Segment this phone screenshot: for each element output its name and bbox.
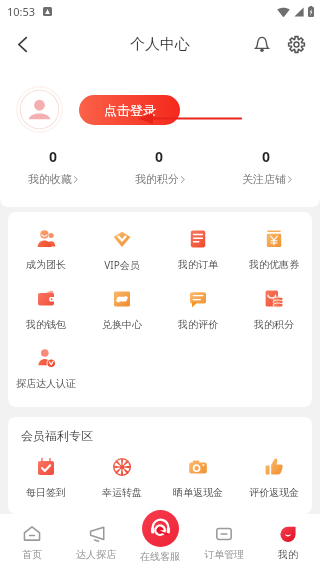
button[interactable]: VIP会员 <box>84 229 160 289</box>
button[interactable]: 0 <box>106 147 213 186</box>
button[interactable]: 0 <box>213 147 320 186</box>
button[interactable]: 每日签到 <box>8 457 84 499</box>
staticText: 0 <box>262 147 271 166</box>
staticText: 我的钱包 <box>26 318 66 331</box>
staticText: 关注店铺 <box>242 172 286 186</box>
staticText: 0 <box>155 147 164 166</box>
staticText: 订单管理 <box>204 548 244 561</box>
staticText: 我的积分 <box>254 318 294 331</box>
button[interactable]: 0 <box>0 147 106 186</box>
button[interactable]: 幸运转盘 <box>84 457 160 499</box>
staticText: 个人中心 <box>130 35 190 54</box>
button[interactable]: 评价返现金 <box>236 457 312 499</box>
staticText: 点击登录 <box>104 102 156 118</box>
staticText: 我的优惠券 <box>249 258 299 271</box>
staticText: 我的评价 <box>178 318 218 331</box>
staticText: 幸运转盘 <box>102 486 142 499</box>
staticText: 探店达人认证 <box>16 377 76 390</box>
staticText: 10:53 <box>7 4 36 19</box>
button[interactable]: 我的评价 <box>160 289 236 348</box>
button[interactable]: Notifications <box>245 27 279 61</box>
button[interactable]: 兑换中心 <box>84 289 160 348</box>
staticText: 达人探店 <box>76 548 116 561</box>
staticText: VIP会员 <box>104 258 140 272</box>
button[interactable]: Avatar <box>16 86 63 133</box>
button[interactable]: 晒单返现金 <box>160 457 236 499</box>
staticText: 我的 <box>278 548 298 561</box>
staticText: 我的积分 <box>135 172 179 186</box>
button[interactable]: 探店达人认证 <box>8 348 84 407</box>
staticText: 成为团长 <box>26 258 66 271</box>
button[interactable]: 我的订单 <box>160 229 236 288</box>
button[interactable]: 我的积分 <box>236 289 312 348</box>
staticText: 会员福利专区 <box>21 428 93 443</box>
staticText: 评价返现金 <box>249 486 299 499</box>
staticText: 0 <box>49 147 58 166</box>
button[interactable]: 在线客服 <box>128 510 192 563</box>
staticText: 兑换中心 <box>102 318 142 331</box>
button[interactable]: 我的 <box>256 514 320 568</box>
button[interactable]: 我的优惠券 <box>236 229 312 288</box>
staticText: 在线客服 <box>140 550 180 563</box>
button[interactable]: 点击登录 <box>79 95 180 125</box>
button[interactable]: 订单管理 <box>192 514 256 568</box>
staticText: 晒单返现金 <box>173 486 223 499</box>
staticText: 首页 <box>22 548 42 561</box>
staticText: 我的收藏 <box>28 172 72 186</box>
other: 在线客服 <box>142 510 179 547</box>
button[interactable]: Settings <box>279 27 313 61</box>
button[interactable]: 达人探店 <box>64 514 128 568</box>
staticText: 我的订单 <box>178 258 218 271</box>
button[interactable]: 我的钱包 <box>8 289 84 348</box>
button[interactable]: Back <box>0 22 44 66</box>
button[interactable]: 首页 <box>0 514 64 568</box>
staticText: 每日签到 <box>26 486 66 499</box>
button[interactable]: 成为团长 <box>8 229 84 288</box>
